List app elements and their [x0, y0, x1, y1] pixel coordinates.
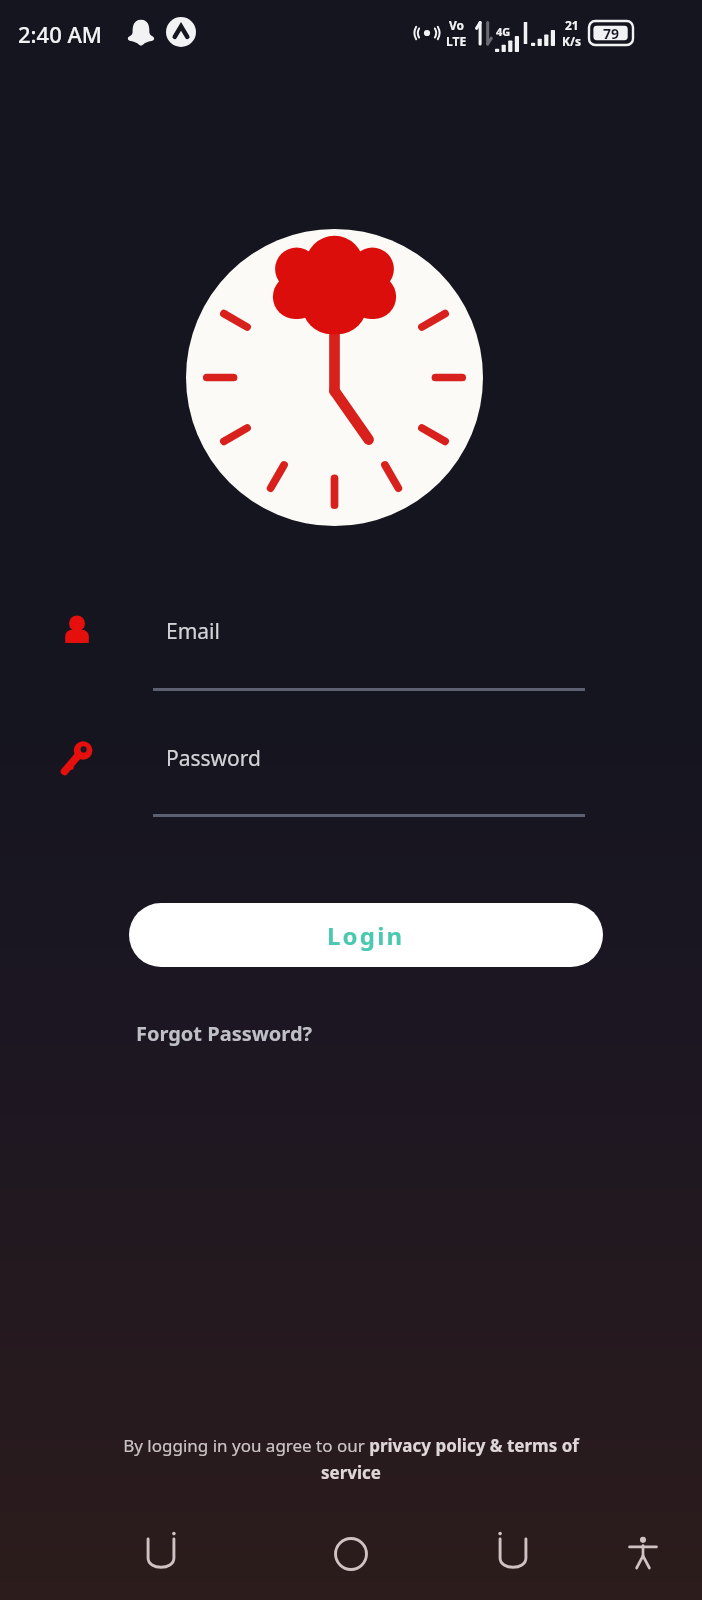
other: Password: [58, 738, 96, 776]
button[interactable]: Email: [153, 598, 585, 692]
staticText: Vo: [449, 17, 465, 33]
staticText: LTE: [446, 33, 467, 49]
staticText: Forgot Password?: [136, 1020, 313, 1047]
button[interactable]: Login: [129, 903, 603, 967]
button[interactable]: Forgot Password?: [136, 1020, 313, 1047]
staticText: 4G: [496, 24, 511, 39]
button[interactable]: Password: [153, 725, 585, 818]
staticText: Login: [327, 919, 405, 952]
button[interactable]: Back: [133, 1526, 189, 1582]
staticText: K/s: [562, 33, 581, 49]
staticText: 2:40 AM: [18, 19, 103, 49]
staticText: Password: [166, 744, 261, 773]
button[interactable]: Home: [323, 1526, 379, 1582]
staticText: 21: [565, 17, 579, 33]
other: Email: [58, 612, 96, 650]
button[interactable]: By logging in you agree to our privacy p…: [95, 1434, 607, 1484]
button[interactable]: Accessibility: [615, 1524, 671, 1580]
staticText: 79: [603, 24, 620, 43]
staticText: Email: [166, 617, 220, 646]
staticText: By logging in you agree to our privacy p…: [95, 1434, 607, 1484]
button[interactable]: Recent apps: [485, 1526, 541, 1582]
